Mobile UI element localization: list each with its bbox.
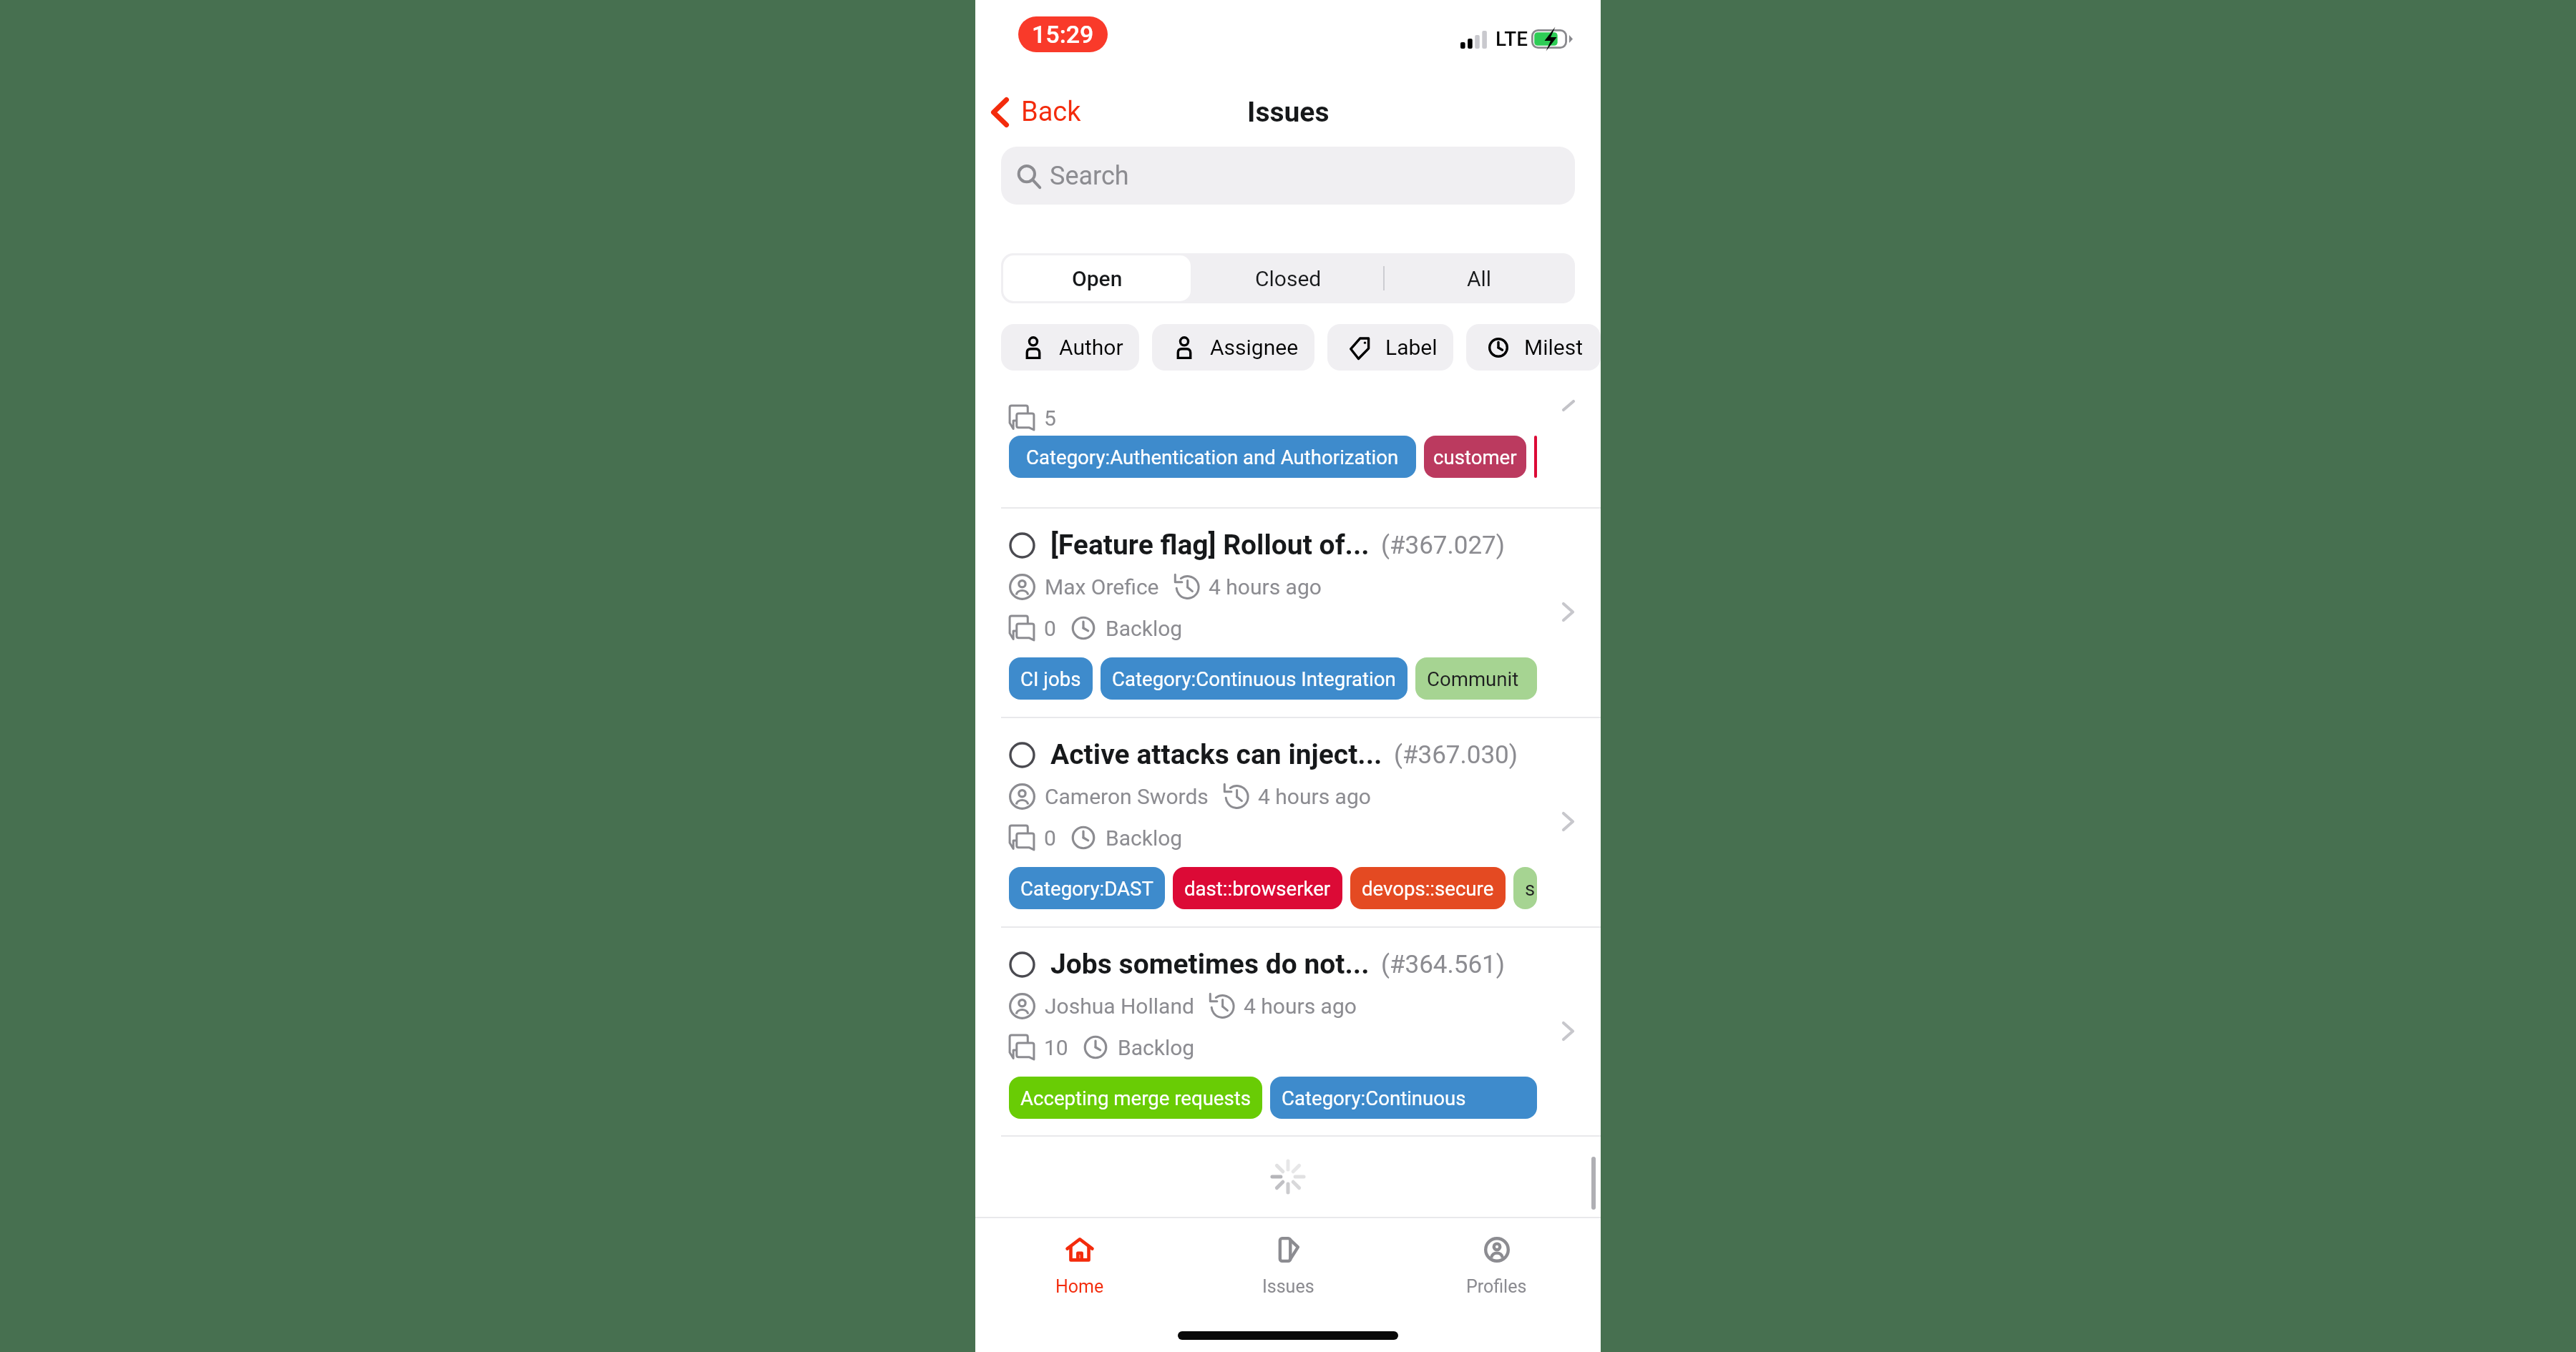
staticText: 15:29: [1032, 20, 1094, 49]
staticText: Author: [1059, 335, 1123, 360]
staticText: Community: [1427, 667, 1526, 690]
staticText: Closed: [1255, 266, 1322, 291]
button[interactable]: Author: [1001, 324, 1139, 371]
staticText: Label: [1385, 335, 1438, 360]
button[interactable]: Home: [975, 1218, 1184, 1328]
button[interactable]: Search: [1001, 147, 1575, 205]
button[interactable]: Jobs sometimes do not...: [975, 926, 1601, 1136]
staticText: dast::browserker: [1184, 877, 1331, 900]
button[interactable]: [Feature flag] Rollout of...: [975, 507, 1601, 717]
staticText: Jobs sometimes do not...: [1050, 948, 1370, 981]
staticText: Joshua Holland: [1045, 994, 1194, 1019]
staticText: (#367.027): [1381, 531, 1505, 560]
staticText: All: [1467, 266, 1492, 291]
button[interactable]: Issues: [1184, 1218, 1392, 1328]
staticText: 4 hours ago: [1258, 784, 1371, 809]
staticText: 0: [1044, 826, 1056, 851]
staticText: Backlog: [1118, 1035, 1195, 1060]
button[interactable]: Active attacks can inject...: [975, 717, 1601, 926]
staticText: Search: [1050, 161, 1129, 191]
staticText: Max Orefice: [1045, 574, 1159, 599]
staticText: Backlog: [1106, 826, 1183, 851]
staticText: Category:Continuous Integration: [1282, 1087, 1526, 1109]
staticText: Accepting merge requests: [1020, 1087, 1251, 1109]
staticText: (#364.561): [1381, 950, 1505, 979]
button[interactable]: Back: [984, 90, 1091, 134]
staticText: Back: [1021, 96, 1081, 128]
button[interactable]: Profiles: [1392, 1218, 1601, 1328]
staticText: Issues: [1247, 96, 1330, 129]
staticText: devops::secure: [1362, 877, 1494, 900]
staticText: Active attacks can inject...: [1050, 738, 1382, 771]
button[interactable]: All: [1386, 255, 1573, 301]
staticText: Profiles: [1466, 1276, 1527, 1297]
staticText: Category:Continuous Integration: [1112, 667, 1396, 690]
button[interactable]: Milestone: [1466, 324, 1601, 371]
staticText: CI jobs: [1020, 667, 1081, 690]
staticText: 10: [1044, 1035, 1068, 1060]
staticText: Issues: [1262, 1276, 1314, 1297]
staticText: [Feature flag] Rollout of...: [1050, 529, 1370, 562]
staticText: LTE: [1496, 27, 1528, 51]
staticText: 4 hours ago: [1209, 574, 1322, 599]
staticText: Assignee: [1210, 335, 1299, 360]
staticText: (#367.030): [1394, 740, 1518, 770]
button[interactable]: Assignee: [1152, 324, 1314, 371]
button[interactable]: Closed: [1195, 255, 1382, 301]
staticText: Home: [1055, 1276, 1104, 1297]
staticText: Category:Authentication and Authorizatio…: [1026, 446, 1399, 469]
staticText: 0: [1044, 616, 1056, 641]
staticText: 4 hours ago: [1244, 994, 1357, 1019]
staticText: Category:DAST: [1020, 877, 1153, 900]
button[interactable]: Label: [1327, 324, 1453, 371]
staticText: 5: [1044, 406, 1056, 431]
staticText: Milestone: [1524, 335, 1585, 360]
button[interactable]: Open: [1003, 255, 1191, 301]
staticText: Backlog: [1106, 616, 1183, 641]
staticText: Cameron Swords: [1045, 784, 1209, 809]
staticText: customer: [1433, 446, 1517, 469]
staticText: Open: [1072, 266, 1123, 291]
